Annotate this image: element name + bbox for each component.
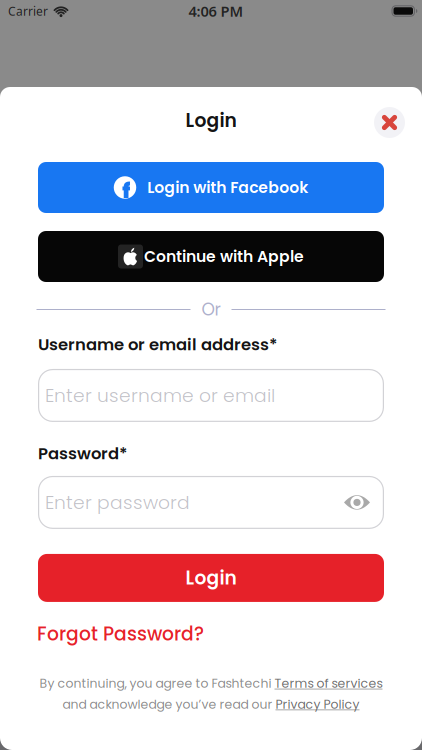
staticText: Password* [38,442,127,465]
staticText: Terms of services [274,675,382,692]
staticText: Carrier [8,3,48,19]
staticText: and acknowledge you’ve read our [62,696,275,713]
staticText: By continuing, you agree to Fashtechi [39,675,274,692]
button[interactable]: Close [374,107,405,138]
button[interactable]: Forgot Password? [37,621,204,647]
staticText: Login [185,565,236,591]
staticText: Forgot Password? [37,621,204,647]
staticText: f [122,176,130,206]
staticText: 4:06 PM [188,1,243,21]
staticText: Login [185,107,236,133]
staticText: Login with Facebook [147,177,308,198]
button[interactable]: Show password [344,493,370,511]
staticText: Or [201,298,220,321]
button[interactable]: Privacy Policy [275,696,359,713]
button[interactable]: Continue with Apple [38,231,384,282]
button[interactable]: f [38,162,384,213]
button[interactable]: Login [38,554,384,602]
staticText: Username or email address* [38,333,277,356]
staticText: Enter password [45,489,190,515]
button[interactable]: Terms of services [274,675,382,692]
staticText: Privacy Policy [275,696,359,713]
staticText: Enter username or email [45,382,275,408]
staticText: Continue with Apple [144,246,304,267]
